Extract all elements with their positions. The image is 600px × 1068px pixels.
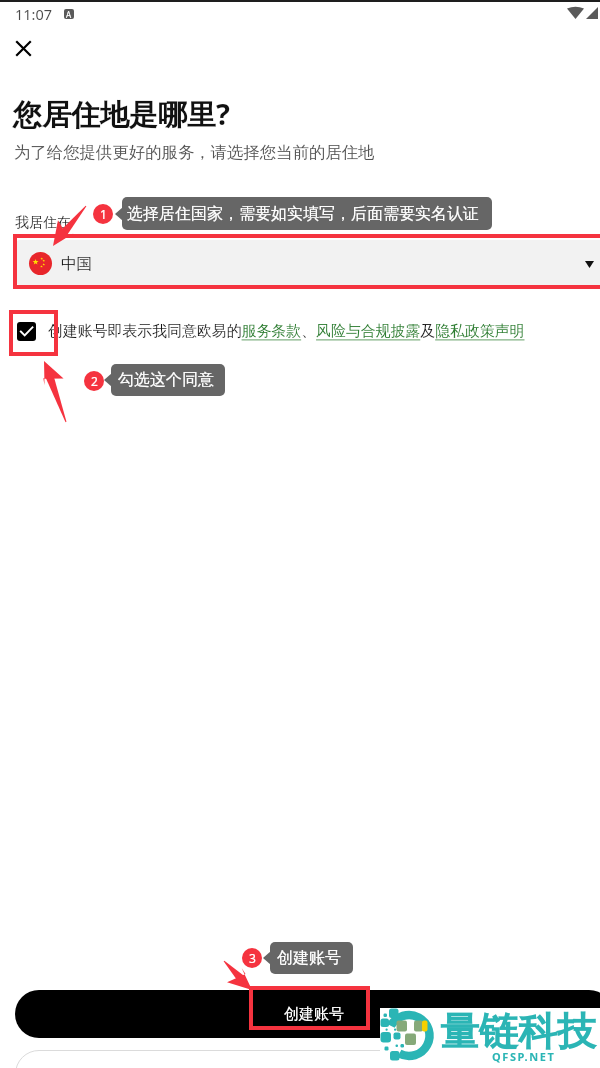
staticText: 创建账号	[277, 948, 341, 968]
staticText: 11:07	[15, 4, 53, 24]
staticText: 您居住地是哪里?	[13, 94, 230, 134]
staticText: 为了给您提供更好的服务，请选择您当前的居住地	[14, 142, 375, 163]
staticText: 创建账号	[284, 1005, 344, 1024]
staticText: 2	[91, 373, 98, 389]
staticText: 选择居住国家，需要如实填写，后面需要实名认证	[127, 204, 479, 224]
staticText: 量链科技	[440, 1007, 596, 1056]
staticText: A	[66, 9, 72, 19]
staticText: 中国	[61, 254, 93, 274]
button[interactable]: 创建账号即表示我同意欧易的服务条款、风险与合规披露及隐私政策声明	[48, 322, 538, 342]
staticText: 创建账号即表示我同意欧易的服务条款、风险与合规披露及隐私政策声明	[48, 322, 525, 341]
staticText: 3	[249, 950, 256, 966]
staticText: 1	[100, 206, 107, 222]
button[interactable]: Agree to terms checkbox	[17, 322, 36, 341]
staticText: 勾选这个同意	[118, 370, 214, 390]
button[interactable]: 创建账号	[15, 990, 600, 1038]
staticText: QFSP.NET	[492, 1049, 556, 1064]
button[interactable]: Close	[5, 30, 42, 67]
staticText: 我居住在	[15, 214, 71, 232]
button[interactable]: 中国	[16, 240, 600, 285]
